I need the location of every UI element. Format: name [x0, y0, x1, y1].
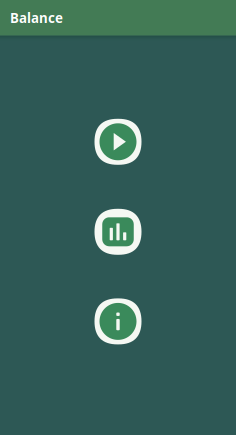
staticText: Balance — [10, 9, 63, 27]
button[interactable]: Play — [94, 119, 141, 165]
button[interactable]: Info — [94, 298, 141, 344]
button[interactable]: Statistics — [94, 209, 141, 255]
